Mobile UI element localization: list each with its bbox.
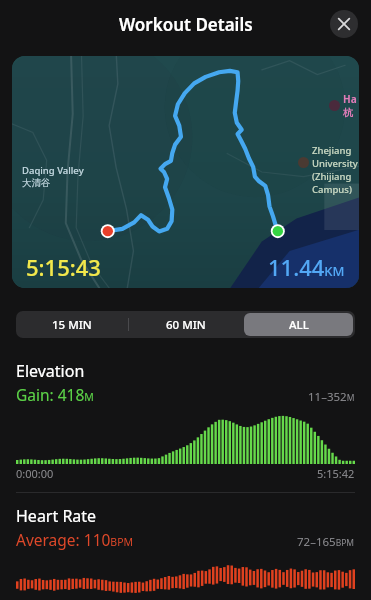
staticText: 15 MIN [52,317,92,333]
staticText: Workout Details [119,13,253,36]
staticText: Zhejiang [312,144,352,157]
staticText: Campus) [312,183,352,196]
staticText: 5:15:43 [26,252,101,282]
staticText: 72–165BPM [297,534,355,550]
staticText: 大清谷 [22,177,51,189]
button[interactable]: ALL [244,313,353,336]
staticText: University [312,157,358,170]
staticText: 60 MIN [166,317,206,333]
staticText: 0:00:00 [16,466,54,481]
button[interactable]: 60 MIN [131,313,240,336]
button[interactable]: Workout route map [12,56,359,288]
staticText: Average: 110BPM [16,529,134,550]
staticText: Gain: 418M [16,384,94,405]
staticText: 5:15:42 [317,466,355,481]
staticText: ALL [289,317,309,333]
button[interactable]: 15 MIN [18,313,126,336]
staticText: Ha [343,92,357,106]
staticText: Heart Rate [16,505,97,527]
staticText: Daqing Valley [22,164,84,177]
staticText: 杭 [343,106,353,119]
staticText: 11.44KM [268,252,345,282]
staticText: 11–352M [308,389,355,405]
staticText: Elevation [16,360,85,382]
staticText: (Zhijiang [312,170,352,183]
button[interactable]: Close [330,10,358,38]
